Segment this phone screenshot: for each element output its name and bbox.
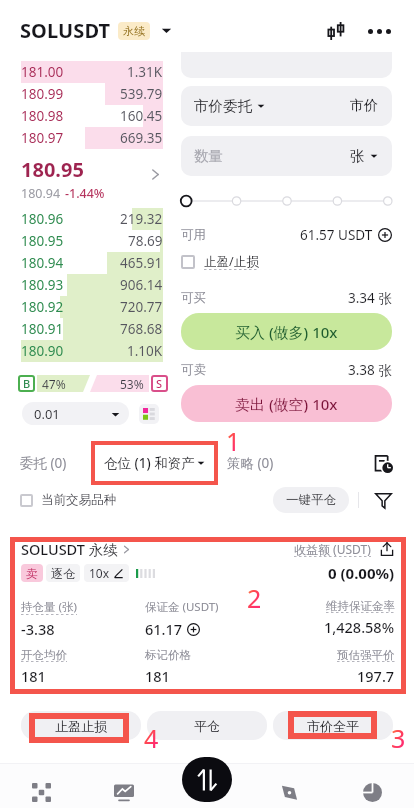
staticText: 1 bbox=[226, 424, 241, 458]
button[interactable]: 0.01 bbox=[22, 402, 129, 425]
button[interactable]: 180.97 bbox=[21, 127, 163, 149]
staticText: 180.90 bbox=[21, 342, 64, 360]
staticText: S bbox=[156, 376, 163, 391]
button[interactable]: 卖出 (做空) 10x bbox=[181, 385, 392, 422]
staticText: 卖出 (做空) 10x bbox=[235, 394, 338, 414]
staticText: 标记价格 bbox=[145, 648, 191, 662]
staticText: 持仓量 (张) bbox=[21, 599, 77, 615]
button[interactable]: 180.92 bbox=[21, 296, 163, 318]
staticText: 当前交易品种 bbox=[41, 492, 116, 508]
staticText: 策略 (0) bbox=[227, 454, 274, 472]
staticText: 180.97 bbox=[21, 129, 64, 147]
staticText: 永续 bbox=[123, 24, 145, 38]
staticText: 收益额 (USDT) bbox=[294, 541, 371, 557]
button[interactable]: 止盈止损 bbox=[21, 711, 141, 740]
staticText: 906.14 bbox=[120, 276, 163, 294]
staticText: 买入 (做多) 10x bbox=[235, 322, 338, 342]
staticText: 仓位 (1) 和资产 bbox=[104, 454, 195, 472]
staticText: 3.38 张 bbox=[348, 361, 392, 379]
button[interactable]: 数量 bbox=[181, 136, 392, 176]
staticText: 3.34 张 bbox=[348, 289, 392, 307]
staticText: 768.68 bbox=[120, 320, 163, 338]
staticText: SOLUSDT bbox=[20, 17, 111, 44]
button[interactable]: Assets bbox=[331, 770, 414, 808]
staticText: 181.00 bbox=[21, 63, 64, 81]
button[interactable]: 180.90 bbox=[21, 340, 163, 362]
button[interactable]: Chart bbox=[82, 770, 165, 808]
button[interactable]: More bbox=[365, 17, 393, 45]
staticText: 669.35 bbox=[120, 129, 163, 147]
staticText: 720.77 bbox=[120, 298, 163, 316]
button[interactable]: 仓位 (1) 和资产 bbox=[91, 441, 218, 485]
button[interactable]: Trade bbox=[182, 757, 232, 802]
staticText: 61.17 bbox=[145, 619, 183, 639]
button[interactable]: 180.98 bbox=[21, 105, 163, 127]
button[interactable]: Chart bbox=[321, 16, 351, 46]
button[interactable]: 180.93 bbox=[21, 274, 163, 296]
button[interactable]: 180.95 bbox=[21, 230, 163, 252]
button[interactable]: 180.91 bbox=[21, 318, 163, 340]
staticText: 保证金 (USDT) bbox=[145, 599, 219, 615]
button[interactable]: 平仓 bbox=[147, 711, 267, 740]
staticText: 市价委托 bbox=[194, 97, 252, 115]
button[interactable]: 10x bbox=[84, 564, 129, 582]
staticText: 1,428.58% bbox=[324, 617, 395, 637]
button[interactable]: 181.00 bbox=[21, 61, 163, 83]
staticText: 3 bbox=[391, 721, 406, 755]
staticText: 卖 bbox=[26, 566, 38, 581]
staticText: SOLUSDT 永续 bbox=[21, 539, 118, 559]
staticText: 张 bbox=[350, 147, 365, 165]
staticText: 一键平仓 bbox=[286, 492, 336, 508]
button[interactable]: Depth layout bbox=[139, 404, 159, 424]
staticText: 市价 bbox=[350, 97, 378, 115]
staticText: 181 bbox=[21, 666, 46, 686]
staticText: 181 bbox=[145, 666, 170, 686]
staticText: -1.44% bbox=[65, 185, 105, 202]
staticText: 2 bbox=[247, 581, 262, 615]
staticText: 180.99 bbox=[21, 85, 64, 103]
staticText: 180.94 bbox=[21, 185, 61, 202]
button[interactable]: 180.94 bbox=[21, 252, 163, 274]
staticText: 180.94 bbox=[21, 254, 64, 272]
button[interactable]: Filter bbox=[371, 488, 395, 512]
staticText: 465.91 bbox=[120, 254, 163, 272]
staticText: 可用 bbox=[181, 227, 206, 243]
staticText: 160.45 bbox=[120, 107, 163, 125]
button[interactable]: 委托 (0) bbox=[20, 451, 67, 475]
staticText: 61.57 USDT bbox=[300, 226, 373, 244]
button[interactable]: SOLUSDT 永续 bbox=[21, 539, 132, 559]
staticText: 180.96 bbox=[21, 210, 64, 228]
button[interactable]: Earn bbox=[248, 770, 331, 808]
staticText: 219.32 bbox=[120, 210, 163, 228]
button[interactable]: Share bbox=[379, 541, 395, 557]
staticText: 180.95 bbox=[21, 156, 84, 183]
button[interactable]: 止盈/止损 bbox=[181, 253, 259, 270]
staticText: 0 (0.00%) bbox=[328, 563, 395, 583]
button[interactable]: 一键平仓 bbox=[273, 487, 349, 513]
staticText: 预估强平价 bbox=[337, 648, 395, 662]
button[interactable]: 180.96 bbox=[21, 208, 163, 230]
staticText: 4 bbox=[144, 721, 159, 755]
staticText: 可卖 bbox=[181, 362, 206, 378]
button[interactable]: 市价委托 bbox=[181, 86, 392, 126]
staticText: 539.79 bbox=[120, 85, 163, 103]
staticText: 委托 (0) bbox=[20, 454, 67, 472]
staticText: 维持保证金率 bbox=[326, 599, 395, 613]
staticText: 1.10K bbox=[127, 342, 163, 360]
button[interactable]: 当前交易品种 bbox=[20, 487, 116, 513]
staticText: -3.38 bbox=[21, 619, 55, 639]
button[interactable]: 策略 (0) bbox=[227, 451, 274, 475]
staticText: 0.01 bbox=[34, 405, 60, 423]
staticText: 53% bbox=[120, 376, 144, 392]
button[interactable]: 买入 (做多) 10x bbox=[181, 313, 392, 350]
button[interactable]: Order history bbox=[370, 450, 396, 476]
button[interactable]: 市价全平 bbox=[273, 711, 393, 740]
staticText: 47% bbox=[42, 376, 66, 392]
staticText: 10x bbox=[89, 565, 110, 581]
button[interactable]: 180.99 bbox=[21, 83, 163, 105]
staticText: 平仓 bbox=[194, 718, 220, 734]
staticText: 180.98 bbox=[21, 107, 64, 125]
staticText: 数量 bbox=[194, 147, 223, 165]
staticText: 止盈/止损 bbox=[204, 253, 259, 270]
button[interactable]: Markets bbox=[0, 770, 82, 808]
